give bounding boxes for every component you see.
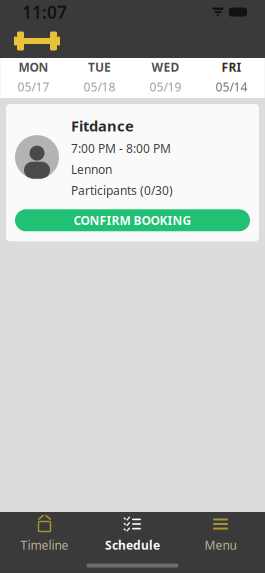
- staticText: WED: [151, 59, 179, 75]
- staticText: TUE: [88, 59, 111, 75]
- staticText: 7:00 PM - 8:00 PM: [71, 140, 171, 156]
- button[interactable]: WED: [132, 58, 198, 98]
- button[interactable]: CONFIRM BOOKING: [15, 209, 250, 231]
- staticText: 05/17: [17, 79, 49, 95]
- staticText: FRI: [221, 59, 241, 75]
- button[interactable]: TUE: [66, 58, 132, 98]
- button[interactable]: Menu: [176, 512, 264, 558]
- staticText: 11:07: [22, 0, 67, 23]
- staticText: Schedule: [105, 537, 160, 553]
- staticText: Lennon: [71, 161, 112, 177]
- staticText: 05/18: [83, 79, 115, 95]
- staticText: 05/19: [149, 79, 181, 95]
- staticText: MON: [18, 59, 48, 75]
- button[interactable]: MON: [0, 58, 66, 98]
- staticText: 05/14: [215, 79, 247, 95]
- button[interactable]: Schedule: [88, 512, 176, 558]
- button[interactable]: FRI: [198, 58, 264, 98]
- staticText: Timeline: [20, 537, 68, 553]
- button[interactable]: Timeline: [0, 512, 88, 558]
- staticText: Participants (0/30): [71, 182, 173, 198]
- staticText: Menu: [204, 537, 236, 553]
- staticText: Fitdance: [71, 116, 134, 135]
- staticText: CONFIRM BOOKING: [73, 212, 191, 228]
